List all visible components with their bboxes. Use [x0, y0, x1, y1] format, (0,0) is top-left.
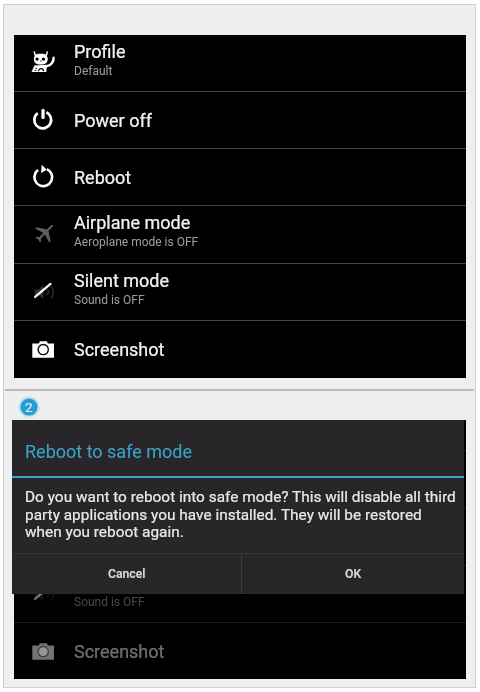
staticText: Reboot to safe mode	[25, 441, 192, 462]
staticText: Silent mode	[74, 572, 170, 593]
button[interactable]: Reboot	[14, 451, 466, 507]
staticText: Aeroplane mode is OFF	[74, 235, 199, 249]
staticText: Sound is OFF	[74, 595, 145, 609]
staticText: Airplane mode	[74, 514, 191, 535]
staticText: Power off	[74, 110, 152, 131]
button[interactable]: Silent mode	[14, 264, 466, 320]
staticText: Sound is OFF	[74, 293, 145, 307]
staticText: OK	[345, 567, 362, 581]
button[interactable]: Cancel	[12, 554, 241, 594]
button[interactable]: Screenshot	[14, 623, 466, 679]
staticText: Screenshot	[74, 641, 165, 662]
staticText: Airplane mode	[74, 212, 191, 233]
button[interactable]: Airplane mode	[14, 508, 466, 565]
button[interactable]: Power off	[14, 92, 466, 148]
staticText: Reboot	[74, 167, 132, 188]
staticText: Silent mode	[74, 270, 170, 291]
staticText: Default	[74, 64, 113, 78]
staticText: 2	[25, 399, 33, 415]
staticText: Cancel	[108, 567, 146, 581]
button[interactable]: OK	[242, 554, 464, 594]
staticText: Aeroplane mode is OFF	[74, 537, 199, 551]
button[interactable]: Airplane mode	[14, 206, 466, 263]
button[interactable]: Silent mode	[14, 566, 466, 622]
button[interactable]: Profile	[14, 35, 466, 91]
button[interactable]: Screenshot	[14, 321, 466, 378]
staticText: Screenshot	[74, 339, 165, 360]
button[interactable]: Power off	[14, 420, 466, 450]
staticText: Do you want to reboot into safe mode? Th…	[25, 488, 461, 541]
button[interactable]: Reboot	[14, 149, 466, 205]
staticText: Reboot	[74, 469, 132, 490]
staticText: Profile	[74, 41, 126, 62]
